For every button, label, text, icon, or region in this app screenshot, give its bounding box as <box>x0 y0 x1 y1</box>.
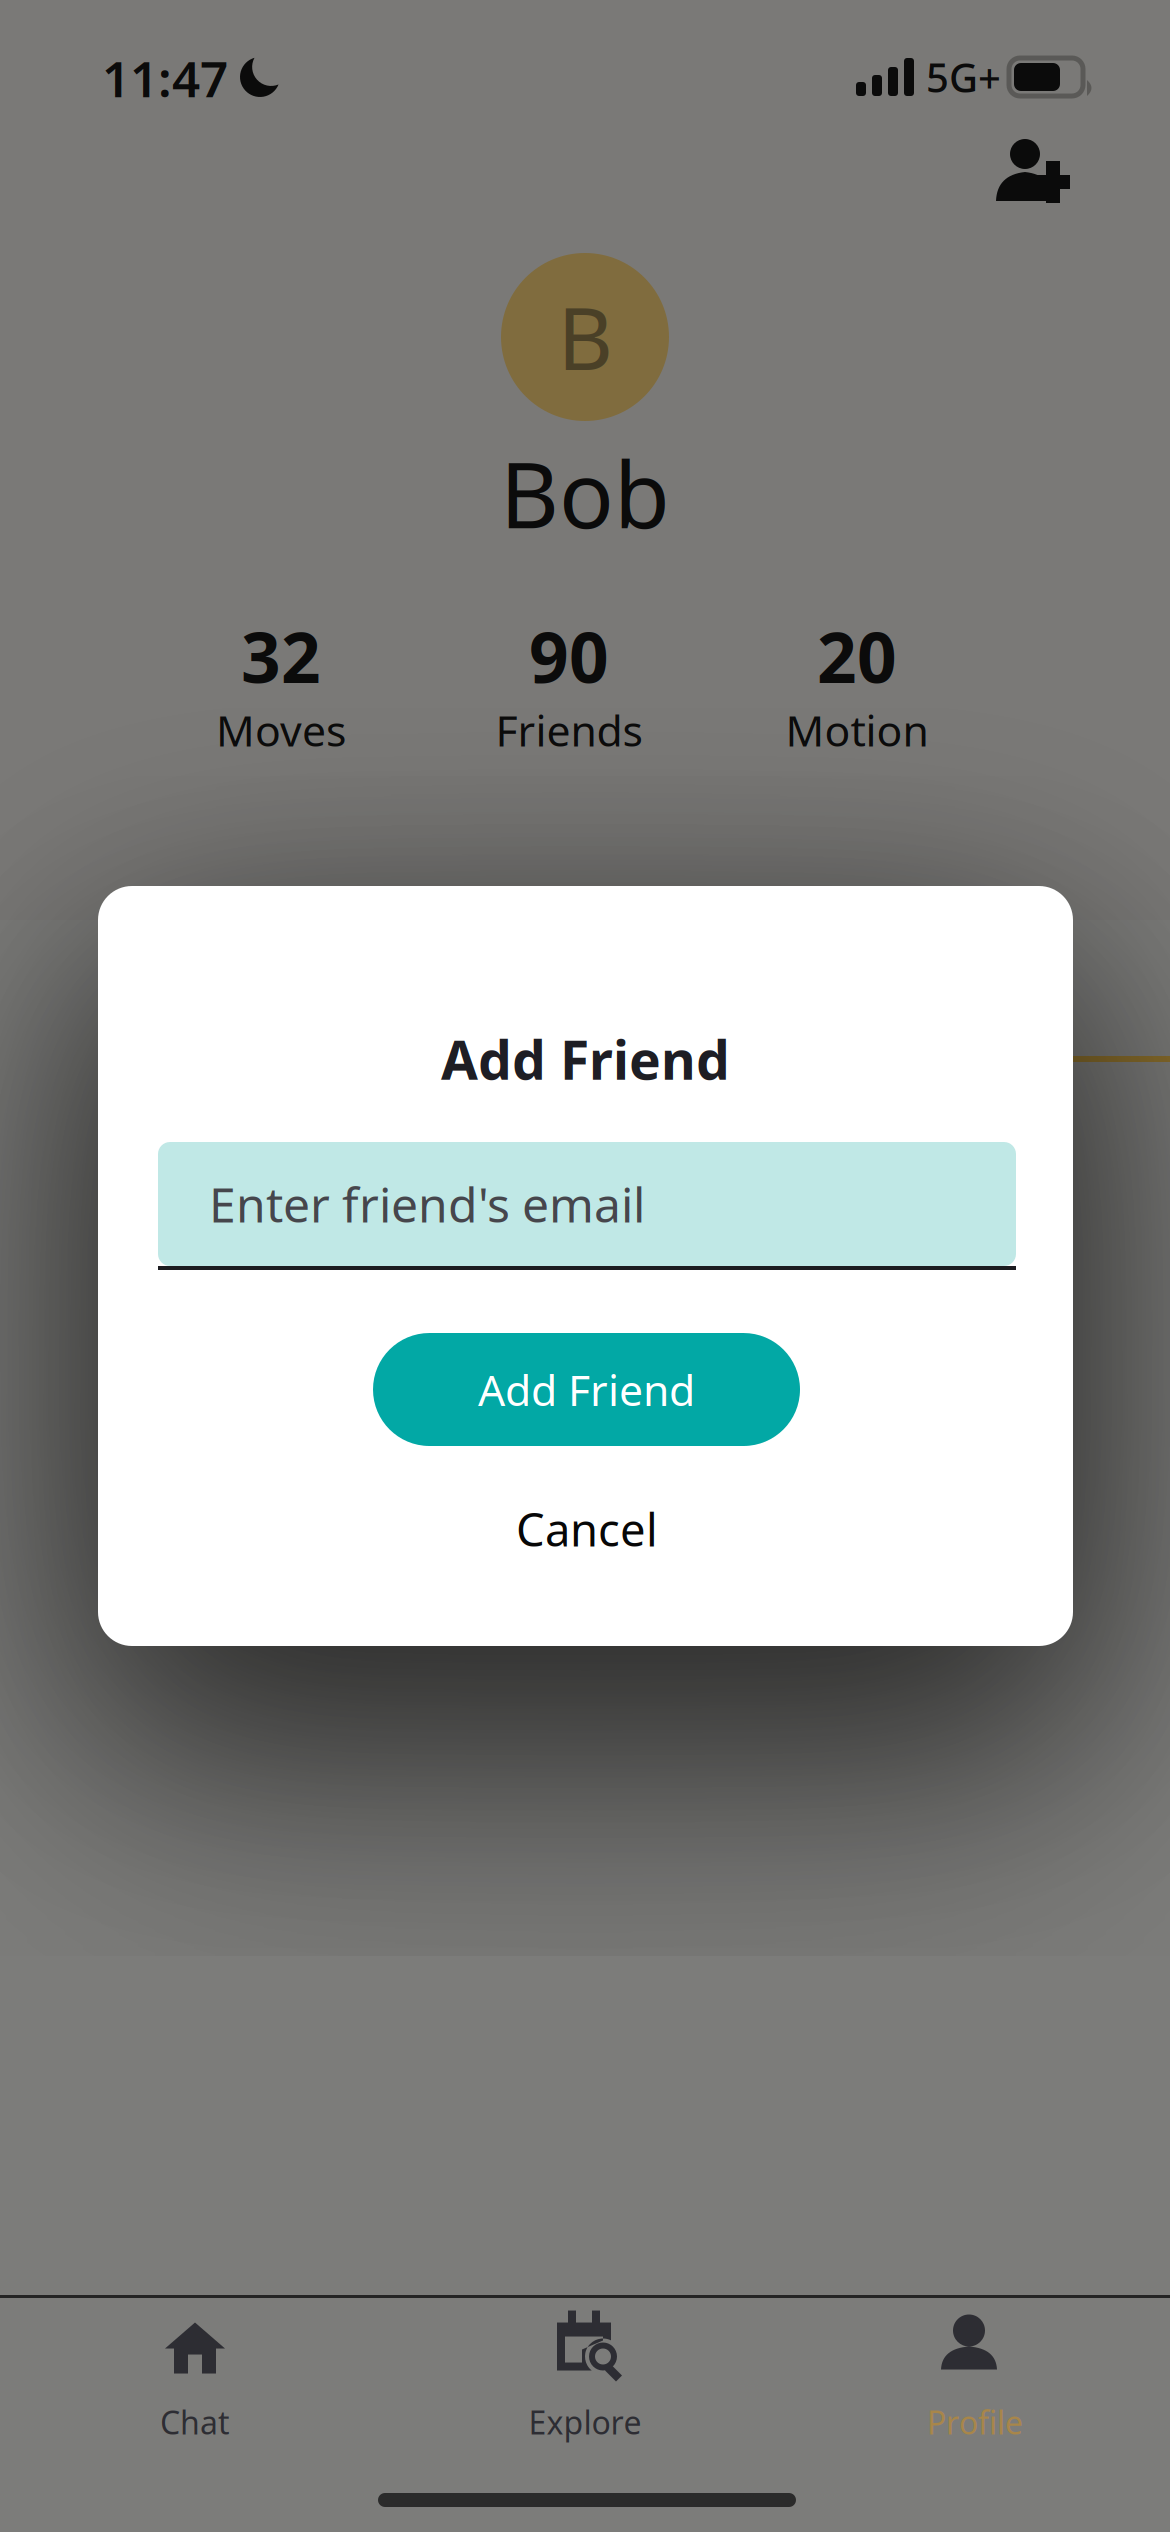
staticText: Enter friend's email <box>209 1172 645 1236</box>
staticText: 90 <box>529 610 609 702</box>
staticText: 32 <box>241 610 321 702</box>
staticText: Bob <box>500 433 670 553</box>
staticText: Motion <box>785 702 928 758</box>
staticText: 11:47 <box>102 45 228 111</box>
button[interactable]: Chat <box>0 2313 390 2473</box>
staticText: Cancel <box>516 1499 658 1559</box>
staticText: Friends <box>495 702 642 758</box>
staticText: 20 <box>817 610 897 702</box>
staticText: Explore <box>528 2401 641 2443</box>
staticText: 5G+ <box>926 50 1001 103</box>
button[interactable]: Explore <box>390 2313 780 2473</box>
button[interactable]: Profile <box>780 2313 1170 2473</box>
staticText: Moves <box>216 702 346 758</box>
staticText: B <box>557 280 612 394</box>
staticText: Profile <box>927 2401 1023 2443</box>
button[interactable]: Add friend <box>968 115 1103 225</box>
button[interactable]: Add Friend <box>373 1333 800 1446</box>
staticText: Add Friend <box>478 1361 695 1418</box>
staticText: Add Friend <box>441 1024 730 1094</box>
button[interactable]: Cancel <box>417 1489 757 1569</box>
staticText: Chat <box>160 2401 230 2443</box>
